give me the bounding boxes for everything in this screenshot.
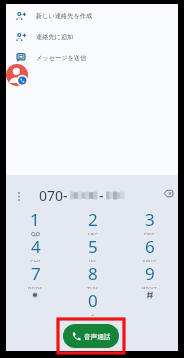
button[interactable]: Backspace <box>160 185 177 202</box>
staticText: 070- <box>39 186 68 205</box>
button[interactable]: More options <box>12 188 26 204</box>
button[interactable]: 4 <box>6 234 64 261</box>
staticText: DEF <box>144 231 155 235</box>
button[interactable]: 新しい連絡先を作成 <box>6 5 178 26</box>
button[interactable]: 9 <box>121 261 178 288</box>
button[interactable]: 1 <box>6 207 64 234</box>
button[interactable]: 8 <box>64 261 121 288</box>
staticText: 9 <box>145 262 155 285</box>
staticText: 1 <box>30 208 40 231</box>
staticText: TUV <box>87 285 98 289</box>
button[interactable]: 0 <box>64 288 121 315</box>
staticText: MNO <box>143 258 157 262</box>
button[interactable]: 7 <box>6 261 64 288</box>
staticText: JKL <box>89 258 98 262</box>
staticText: 5 <box>88 235 98 258</box>
staticText: + <box>91 312 95 316</box>
staticText: 3 <box>145 208 155 231</box>
staticText: 新しい連絡先を作成 <box>36 12 93 20</box>
staticText: 0 <box>88 289 98 312</box>
staticText: 2 <box>88 208 98 231</box>
staticText: PQRS <box>28 285 43 289</box>
staticText: 6 <box>145 235 155 258</box>
button[interactable]: 3 <box>121 207 178 234</box>
staticText: - <box>99 186 104 205</box>
button[interactable]: 5 <box>64 234 121 261</box>
staticText: 8 <box>88 262 98 285</box>
staticText: ABC <box>87 231 98 235</box>
staticText: 音声通話 <box>84 333 111 341</box>
staticText: 連絡先に追加 <box>36 33 74 41</box>
button[interactable] <box>6 288 64 315</box>
staticText: メッセージを送信 <box>36 54 87 62</box>
staticText: 7 <box>31 262 41 285</box>
staticText: WXYZ <box>142 285 157 289</box>
button[interactable]: 音声通話 <box>63 324 119 348</box>
button[interactable]: 6 <box>121 234 178 261</box>
staticText: 4 <box>31 235 41 258</box>
button[interactable]: 2 <box>64 207 121 234</box>
button[interactable]: 連絡先に追加 <box>6 26 178 47</box>
button[interactable]: メッセージを送信 <box>6 47 178 68</box>
button[interactable] <box>121 288 178 315</box>
staticText: GHI <box>30 258 41 262</box>
